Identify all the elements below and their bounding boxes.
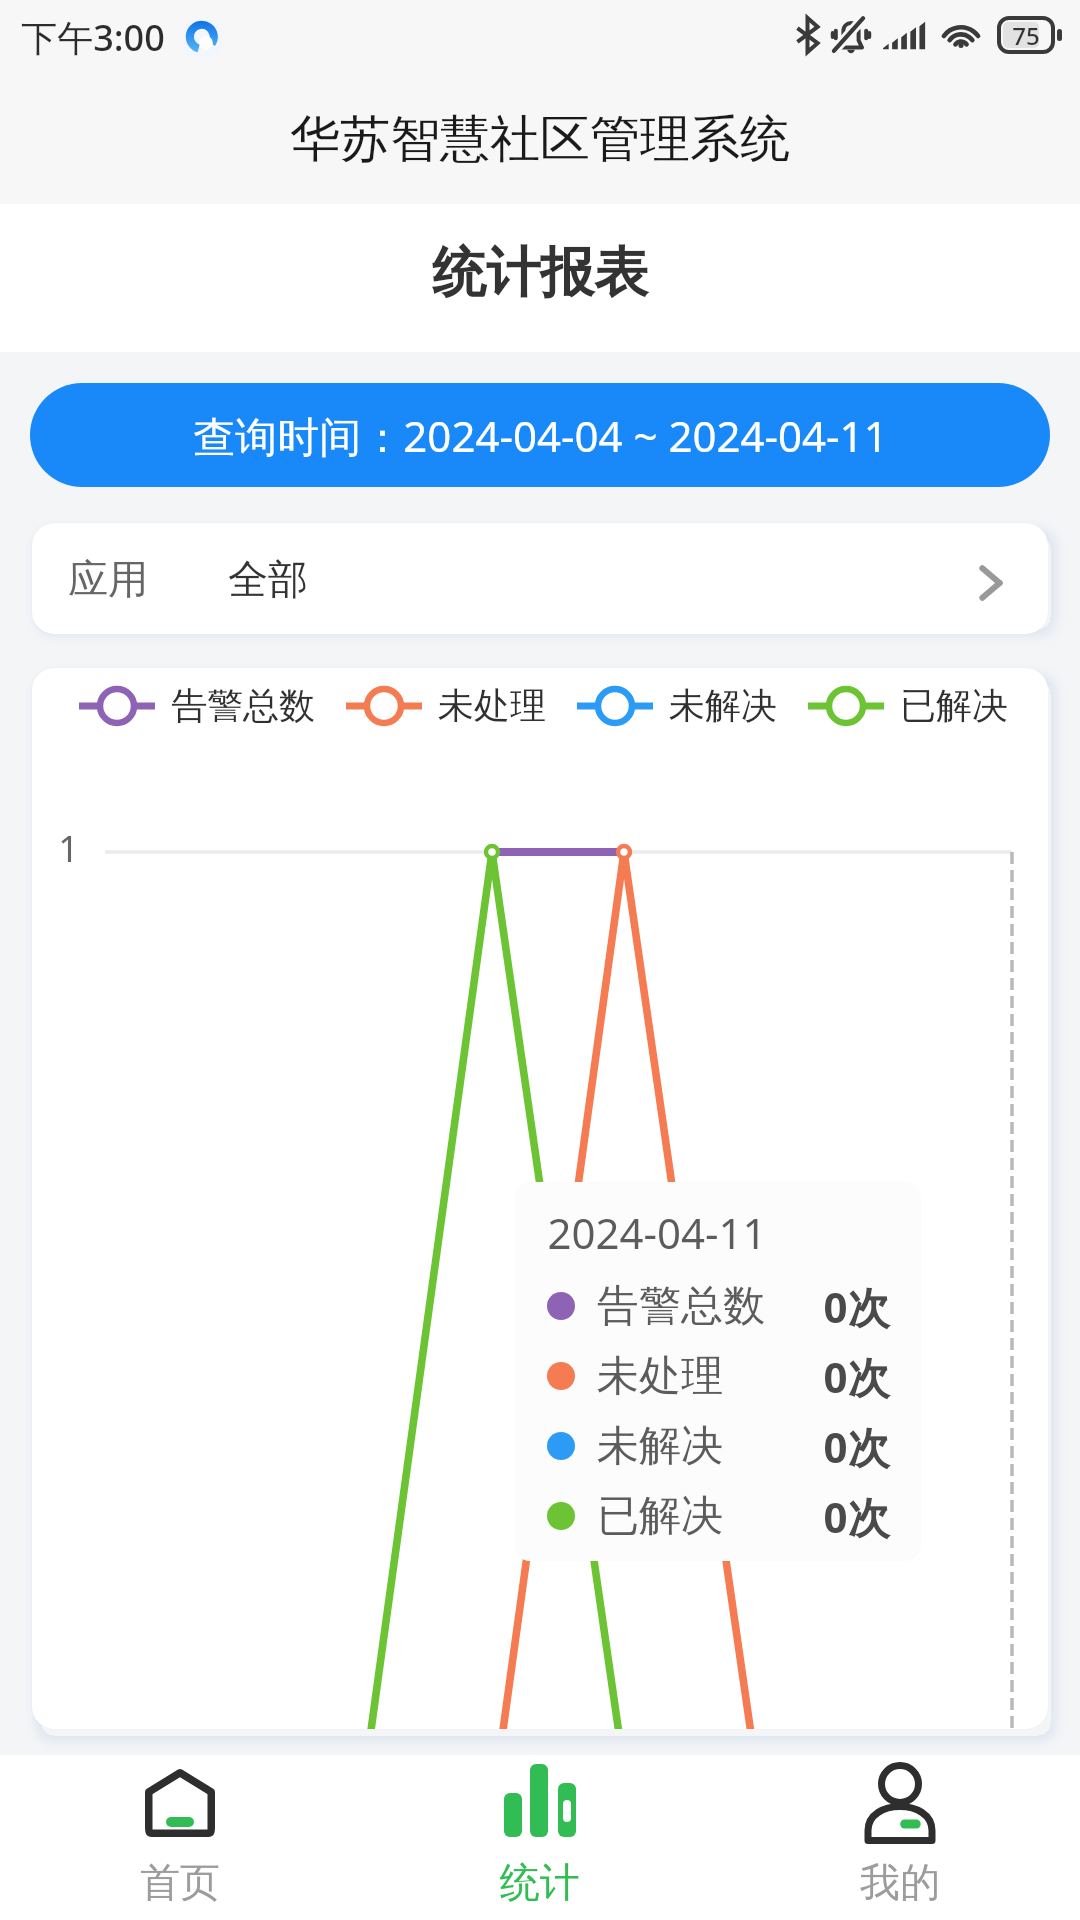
staticText: 0次 [823,1348,890,1405]
button[interactable]: 我的 [720,1755,1080,1920]
staticText: 全部 [228,554,308,604]
button[interactable]: 应用 [32,523,1048,634]
staticText: 下午3:00 [21,13,165,62]
button[interactable]: 查询时间：2024-04-04 ~ 2024-04-11 [30,383,1050,487]
staticText: 查询时间：2024-04-04 ~ 2024-04-11 [193,407,888,464]
staticText: 未解决 [669,683,777,728]
staticText: 我的 [860,1857,940,1907]
staticText: 0次 [823,1278,890,1335]
staticText: 0次 [823,1418,890,1475]
staticText: 告警总数 [171,683,315,728]
staticText: 未处理 [597,1350,723,1403]
staticText: 已解决 [597,1490,723,1543]
staticText: 统计 [500,1857,580,1907]
staticText: 已解决 [900,683,1008,728]
staticText: 75 [1012,19,1040,52]
staticText: 1 [58,824,79,873]
staticText: 2024-04-11 [547,1204,767,1261]
button[interactable]: 首页 [0,1755,360,1920]
staticText: 0次 [823,1488,890,1545]
staticText: 华苏智慧社区管理系统 [290,108,790,171]
staticText: 首页 [140,1857,220,1907]
button[interactable]: 统计 [360,1755,720,1920]
staticText: 统计报表 [432,239,648,307]
staticText: 应用 [68,554,148,604]
staticText: 未解决 [597,1420,723,1473]
staticText: 告警总数 [597,1280,765,1333]
staticText: 未处理 [438,683,546,728]
